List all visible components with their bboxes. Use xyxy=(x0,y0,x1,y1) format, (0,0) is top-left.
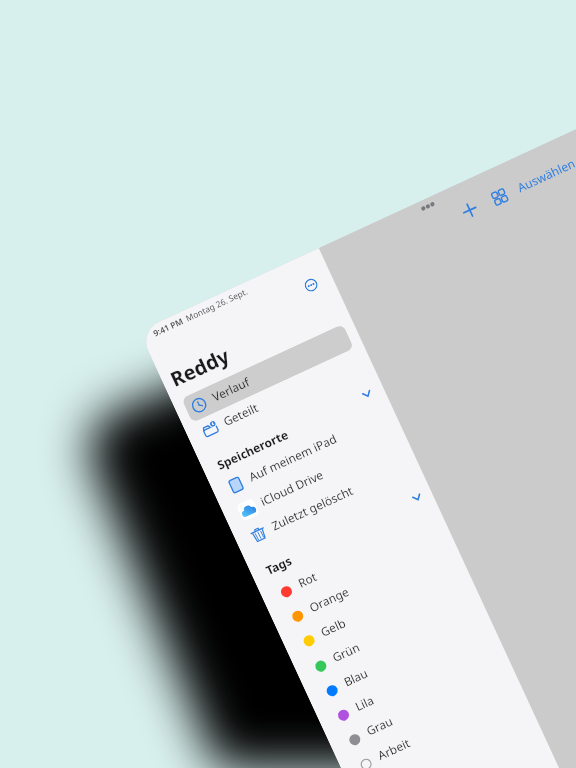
staticText: Blau xyxy=(341,664,370,689)
button[interactable]: Orange xyxy=(277,534,453,634)
staticText: Montag 26. Sept. xyxy=(184,285,249,324)
button[interactable]: Add xyxy=(459,199,480,221)
button[interactable]: More options xyxy=(302,276,320,294)
staticText: Rot xyxy=(295,568,319,591)
staticText: Grün xyxy=(330,638,363,665)
staticText: Zuletzt gelöscht xyxy=(269,482,355,533)
button[interactable]: Lila xyxy=(322,633,499,733)
staticText: Tags xyxy=(263,552,294,578)
button[interactable]: Auf meinem iPad xyxy=(216,403,393,504)
staticText: Orange xyxy=(306,583,351,615)
staticText: Gelb xyxy=(318,614,348,640)
staticText: Auf meinem iPad xyxy=(246,430,339,484)
staticText: Grau xyxy=(364,712,396,739)
staticText: 9:41 PM xyxy=(151,315,185,339)
staticText: Reddy xyxy=(166,342,234,393)
staticText: Verlauf xyxy=(209,373,252,404)
button[interactable]: Auswählen xyxy=(515,155,576,195)
button[interactable]: Gelb xyxy=(288,558,464,659)
staticText: Lila xyxy=(352,692,376,714)
button[interactable]: Verlauf xyxy=(179,323,356,424)
staticText: Arbeit xyxy=(375,734,412,763)
button[interactable]: Grau xyxy=(334,657,510,758)
button[interactable]: Arbeit xyxy=(345,682,522,768)
button[interactable]: Rot xyxy=(265,509,442,610)
button[interactable]: Grün xyxy=(300,584,476,684)
staticText: iCloud Drive xyxy=(257,466,326,509)
staticText: Speicherorte xyxy=(214,426,291,473)
button[interactable]: iCloud Drive xyxy=(228,427,404,528)
button[interactable]: Grid view xyxy=(490,186,511,208)
button[interactable]: Zuletzt gelöscht xyxy=(239,452,415,553)
staticText: Geteilt xyxy=(220,399,261,429)
button[interactable]: Blau xyxy=(311,608,488,709)
staticText: Auswählen xyxy=(515,155,576,195)
button[interactable]: Geteilt xyxy=(191,347,367,448)
